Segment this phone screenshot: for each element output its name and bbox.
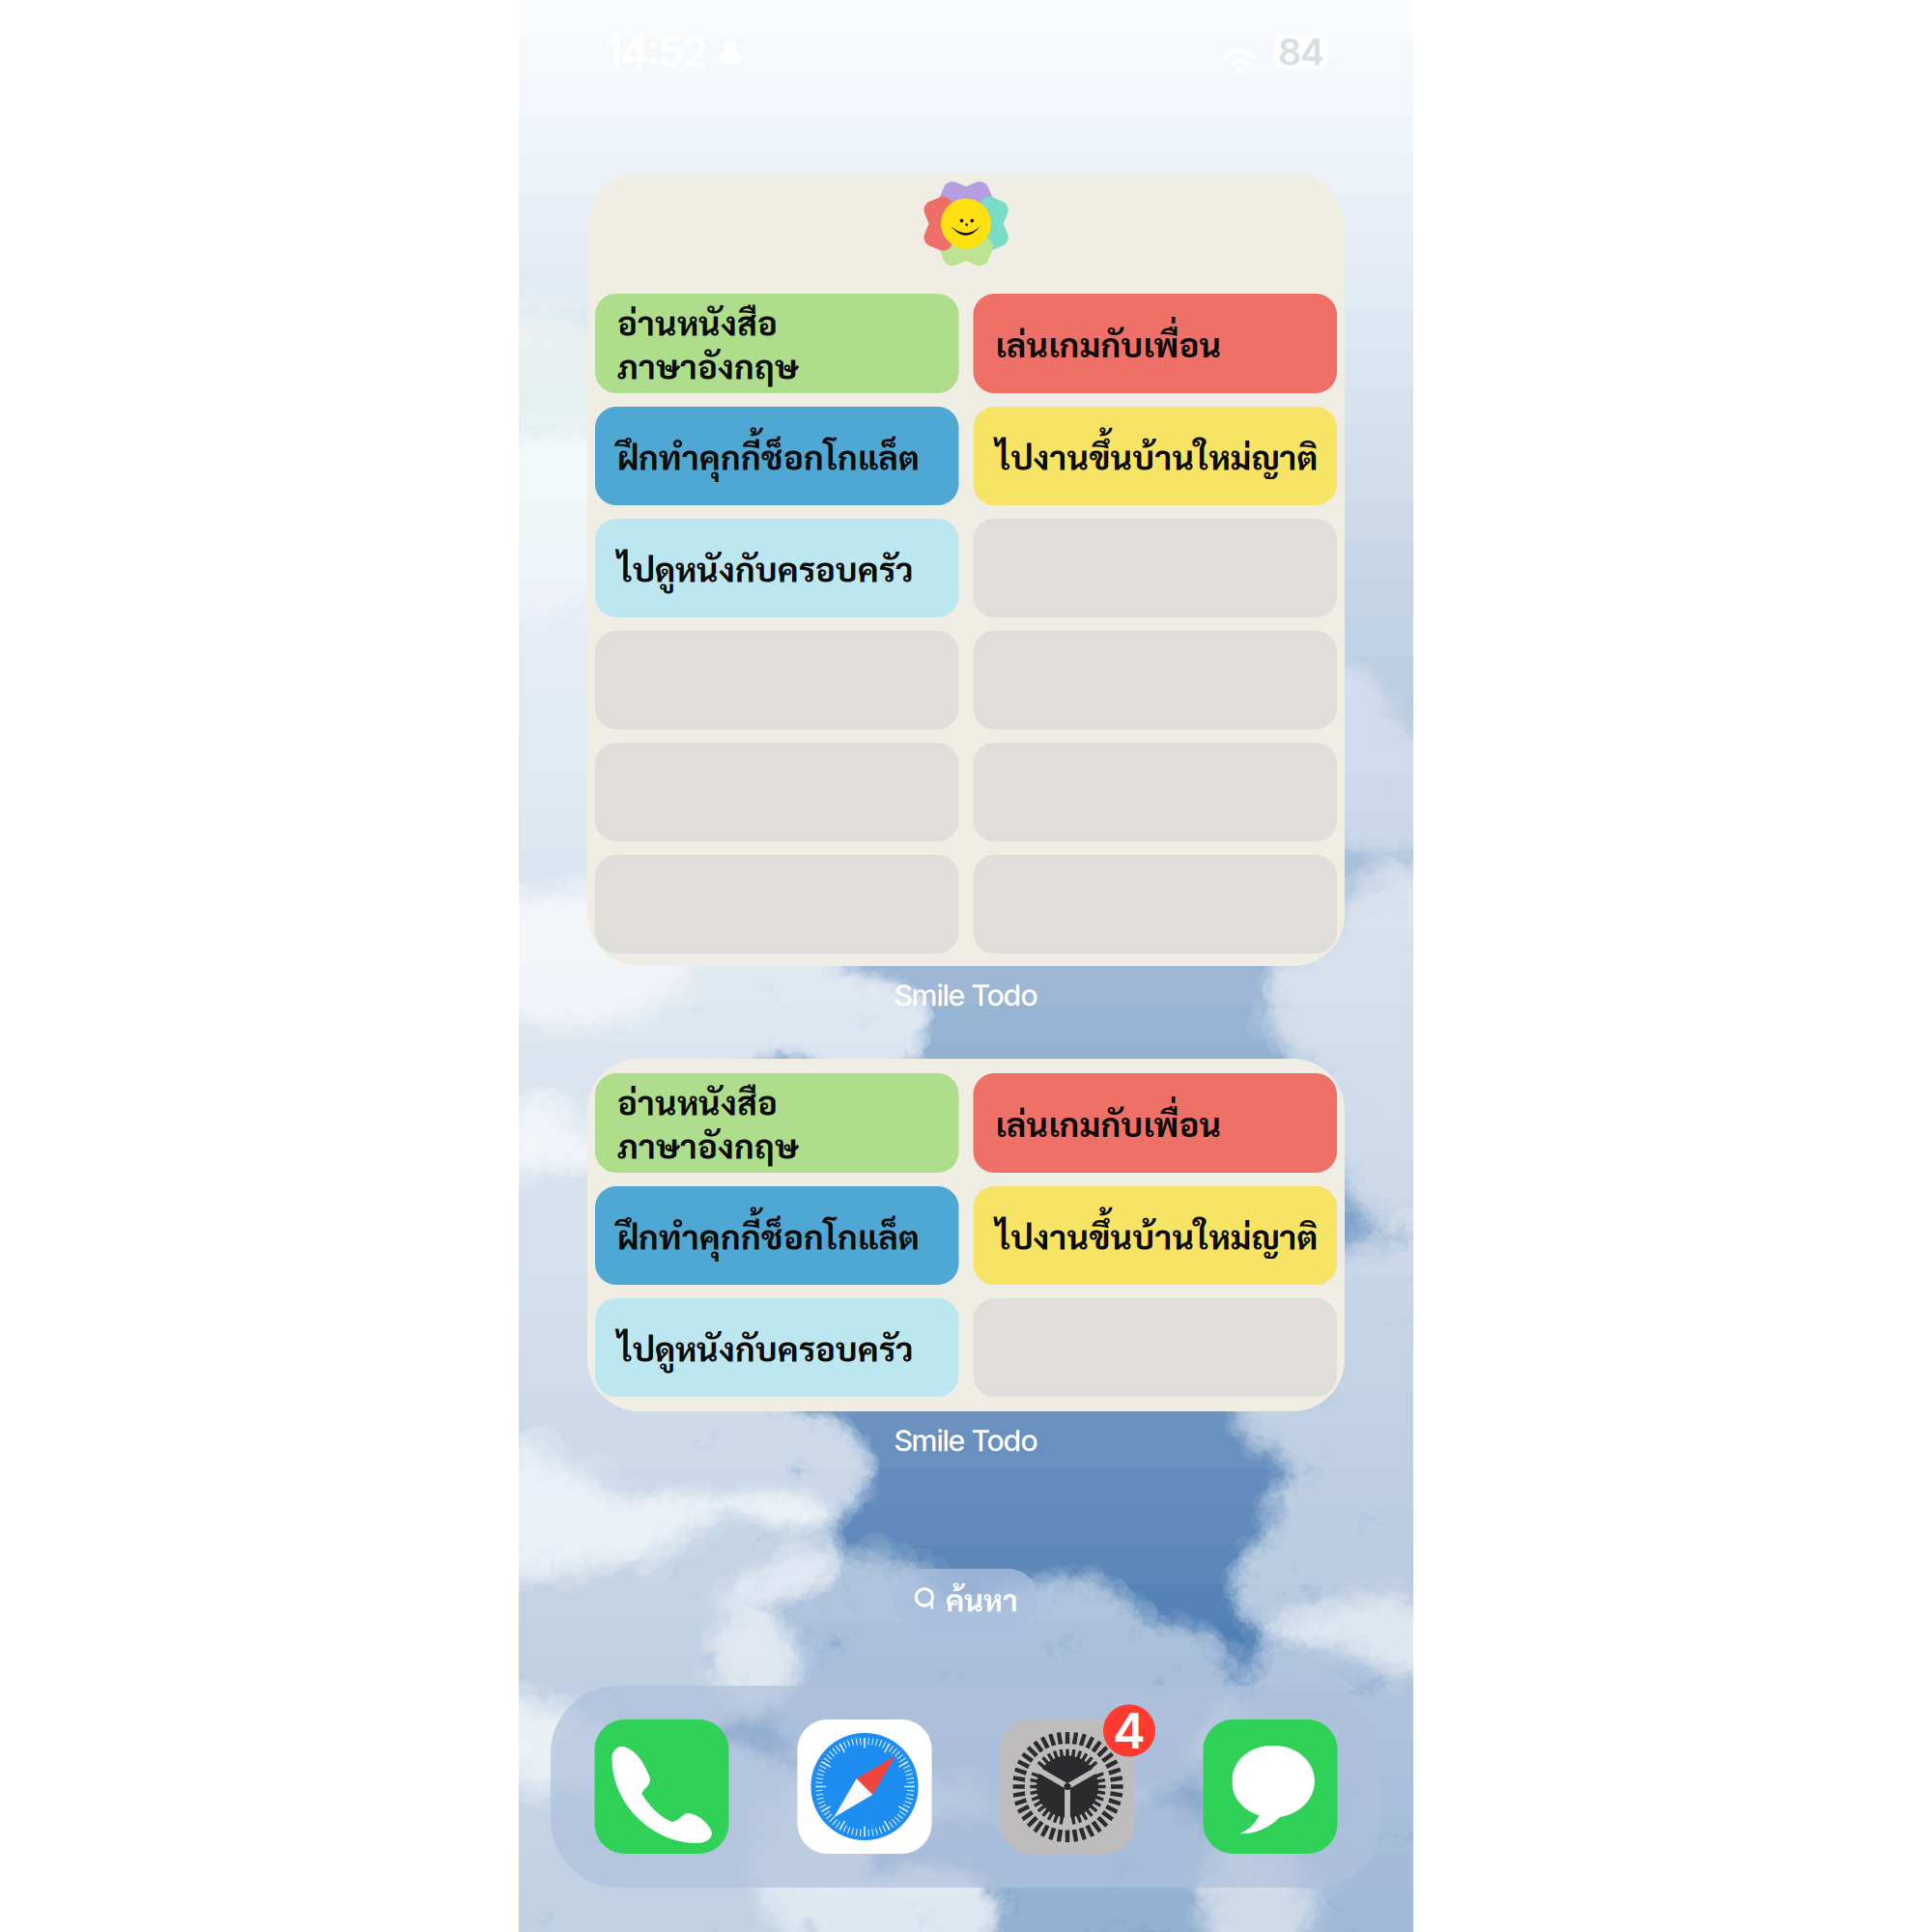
button[interactable]: ฝึกทำคุกกี้ช็อกโกแล็ต [595,407,959,505]
button[interactable]: ค้นหา [894,1569,1038,1630]
button[interactable]: Phone [595,1719,729,1854]
staticText: ไปดูหนังกับครอบครัว [617,1326,914,1369]
button[interactable]: เล่นเกมกับเพื่อน [973,294,1337,393]
staticText: ไปงานขึ้นบ้านใหม่ญาติ [995,1214,1318,1257]
staticText: เล่นเกมกับเพื่อน [995,322,1222,365]
button[interactable]: อ่านหนังสือ ภาษาอังกฤษ [595,294,959,393]
button[interactable]: เล่นเกมกับเพื่อน [973,1073,1337,1173]
staticText: เล่นเกมกับเพื่อน [995,1101,1222,1145]
button[interactable]: Safari [797,1719,932,1854]
button[interactable]: ไปดูหนังกับครอบครัว [595,519,959,617]
staticText: อ่านหนังสือ ภาษาอังกฤษ [617,1079,799,1166]
staticText: 14:52 [606,27,707,77]
staticText: ค้นหา [946,1580,1018,1619]
button[interactable]: ฝึกทำคุกกี้ช็อกโกแล็ต [595,1186,959,1285]
staticText: 84 [1278,30,1324,74]
staticText: ฝึกทำคุกกี้ช็อกโกแล็ต [617,434,920,478]
button[interactable]: อ่านหนังสือ ภาษาอังกฤษ [595,1073,959,1173]
staticText: ไปดูหนังกับครอบครัว [617,546,914,590]
staticText: อ่านหนังสือ ภาษาอังกฤษ [617,300,799,387]
staticText: Smile Todo [895,977,1037,1013]
staticText: Smile Todo [895,1422,1037,1458]
button[interactable]: ไปงานขึ้นบ้านใหม่ญาติ [973,407,1337,505]
button[interactable]: ไปดูหนังกับครอบครัว [595,1298,959,1397]
staticText: 4 [1114,1701,1145,1760]
button[interactable]: Messages [1203,1719,1337,1854]
button[interactable]: Settings [1000,1719,1135,1854]
staticText: ไปงานขึ้นบ้านใหม่ญาติ [995,434,1318,478]
button[interactable]: ไปงานขึ้นบ้านใหม่ญาติ [973,1186,1337,1285]
staticText: ฝึกทำคุกกี้ช็อกโกแล็ต [617,1214,920,1257]
